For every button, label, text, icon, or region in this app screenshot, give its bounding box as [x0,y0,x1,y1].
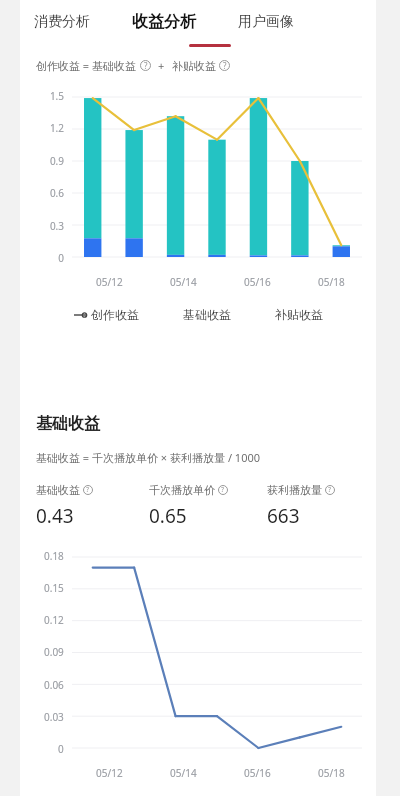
staticText: ? [144,60,148,71]
button[interactable]: 说明 [325,485,335,495]
staticText: 补贴收益 [275,307,323,322]
staticText: 0 [58,742,64,756]
button[interactable]: 获利播放量 [267,483,366,529]
button[interactable]: 基础收益 [183,307,231,322]
button[interactable]: 说明 [218,485,228,495]
staticText: 0.15 [44,581,64,595]
staticText: 0 [58,251,64,265]
staticText: 收益分析 [132,12,196,32]
staticText: 0.03 [44,710,64,724]
staticText: 05/12 [96,766,123,780]
staticText: 基础收益 [36,483,80,497]
button[interactable]: 说明 [140,60,151,71]
button[interactable]: 基础收益 [36,483,149,529]
button[interactable]: 补贴收益 [275,307,323,322]
staticText: 基础收益 [183,307,231,322]
staticText: 用户画像 [238,13,294,31]
staticText: 补贴收益 [172,59,216,73]
button[interactable]: 消费分析 [34,7,90,37]
staticText: ? [223,60,227,71]
staticText: ? [328,485,332,495]
staticText: 663 [267,503,300,529]
button[interactable]: 用户画像 [238,7,294,37]
staticText: 0.9 [49,154,64,168]
staticText: 消费分析 [34,13,90,31]
staticText: 千次播放单价 [149,483,215,497]
staticText: 0.06 [44,678,64,692]
staticText: 0.18 [44,549,64,563]
button[interactable]: 说明 [83,485,93,495]
staticText: 1.5 [49,89,64,103]
staticText: ? [221,485,225,495]
staticText: 0.6 [49,186,64,200]
staticText: 0.65 [149,503,187,529]
staticText: 05/14 [170,275,197,289]
staticText: 05/14 [170,766,197,780]
staticText: 1.2 [49,121,64,135]
staticText: 05/18 [318,275,345,289]
staticText: 0.09 [44,645,64,659]
staticText: 05/16 [244,275,271,289]
staticText: 05/16 [244,766,271,780]
staticText: ? [86,485,90,495]
staticText: 0.12 [44,613,64,627]
button[interactable]: 说明 [219,60,230,71]
staticText: 0.3 [49,219,64,233]
button[interactable]: 收益分析 [132,6,196,38]
staticText: + [158,58,165,73]
staticText: 基础收益 = 千次播放单价 × 获利播放量 / 1000 [36,450,261,465]
staticText: 创作收益 = 基础收益 [36,58,137,73]
button[interactable]: 千次播放单价 [149,483,267,529]
button[interactable]: 创作收益 [74,307,139,322]
staticText: 05/18 [318,766,345,780]
staticText: 获利播放量 [267,483,322,497]
staticText: 05/12 [96,275,123,289]
staticText: 基础收益 [36,414,100,434]
staticText: 创作收益 [91,307,139,322]
staticText: 0.43 [36,503,74,529]
